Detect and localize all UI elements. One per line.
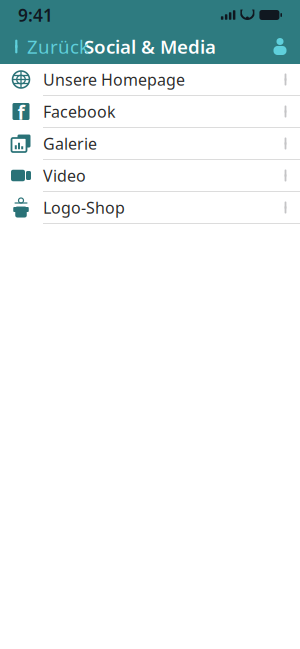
- button[interactable]: Zurück: [4, 30, 97, 62]
- staticText: Social & Media: [84, 34, 216, 59]
- staticText: Video: [43, 165, 86, 186]
- staticText: 9:41: [18, 3, 53, 26]
- button[interactable]: Video: [0, 160, 300, 192]
- button[interactable]: Galerie: [0, 128, 300, 160]
- staticText: Zurück: [27, 34, 89, 59]
- button[interactable]: Logo-Shop: [0, 192, 300, 224]
- staticText: Unsere Homepage: [43, 69, 185, 90]
- staticText: f: [17, 100, 24, 125]
- staticText: Galerie: [43, 133, 97, 154]
- staticText: Logo-Shop: [43, 197, 125, 218]
- button[interactable]: f: [0, 96, 300, 128]
- button[interactable]: Profil: [264, 30, 296, 62]
- staticText: Facebook: [43, 101, 116, 122]
- button[interactable]: Unsere Homepage: [0, 64, 300, 96]
